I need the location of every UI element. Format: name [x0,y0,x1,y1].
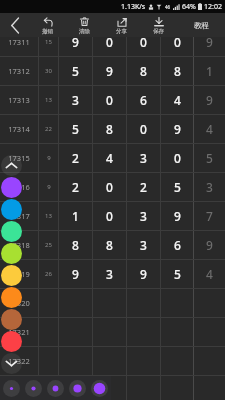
button[interactable]: 17318 [0,231,38,260]
button[interactable] [59,289,92,318]
button[interactable]: 3 [194,173,225,202]
button[interactable]: 30 [39,57,58,86]
button[interactable] [59,318,92,347]
button[interactable] [39,376,58,400]
button[interactable]: 4 [194,260,225,289]
button[interactable]: 1 [194,57,225,86]
button[interactable]: 17315 [0,144,38,173]
button[interactable] [39,318,58,347]
button[interactable] [127,347,160,376]
button[interactable]: 9 [59,28,92,57]
button[interactable]: Color swatch [1,177,22,198]
button[interactable]: 17322 [0,347,38,376]
button[interactable]: 25 [39,231,58,260]
button[interactable]: 0 [93,86,126,115]
button[interactable]: 保存 [140,13,177,37]
button[interactable] [59,376,92,400]
button[interactable]: Scroll up [1,155,22,176]
button[interactable]: 17319 [0,260,38,289]
button[interactable]: 2 [59,144,92,173]
button[interactable]: 17316 [0,173,38,202]
button[interactable]: 3 [59,86,92,115]
button[interactable]: 2 [127,173,160,202]
button[interactable]: 17311 [0,28,38,57]
button[interactable]: 0 [127,28,160,57]
button[interactable]: 5 [194,144,225,173]
button[interactable]: 撤销 [29,13,66,37]
button[interactable]: 17323 [0,376,38,400]
button[interactable]: 17320 [0,289,38,318]
button[interactable] [59,347,92,376]
button[interactable] [93,376,126,400]
button[interactable]: Color swatch [1,331,22,352]
button[interactable]: 4 [194,115,225,144]
button[interactable]: 4 [161,86,193,115]
button[interactable]: 分享 [103,13,140,37]
button[interactable]: 3 [127,231,160,260]
button[interactable]: Color swatch [1,221,22,242]
button[interactable]: 7 [194,202,225,231]
button[interactable]: 9 [161,202,193,231]
button[interactable]: 0 [161,28,193,57]
button[interactable] [39,289,58,318]
button[interactable]: 17313 [0,86,38,115]
button[interactable] [93,347,126,376]
button[interactable]: 8 [59,231,92,260]
button[interactable]: 0 [127,115,160,144]
button[interactable]: 4 [93,144,126,173]
button[interactable]: 0 [93,28,126,57]
button[interactable]: 17314 [0,115,38,144]
button[interactable]: 8 [93,231,126,260]
button[interactable]: 9 [194,28,225,57]
button[interactable]: Color swatch [1,199,22,220]
button[interactable]: 13 [39,86,58,115]
button[interactable]: Back [0,13,29,37]
button[interactable] [194,347,225,376]
button[interactable]: 8 [127,57,160,86]
button[interactable]: 0 [93,202,126,231]
button[interactable]: 13 [39,202,58,231]
button[interactable]: 9 [93,57,126,86]
button[interactable]: 6 [127,86,160,115]
button[interactable] [39,347,58,376]
button[interactable]: 9 [194,231,225,260]
button[interactable]: 5 [59,115,92,144]
button[interactable]: 教程 [177,13,225,37]
button[interactable]: 9 [161,115,193,144]
button[interactable]: 5 [59,57,92,86]
button[interactable]: 26 [39,260,58,289]
button[interactable]: 8 [93,115,126,144]
button[interactable] [161,347,193,376]
button[interactable]: Color swatch [1,265,22,286]
button[interactable]: 6 [161,231,193,260]
button[interactable]: 5 [161,173,193,202]
button[interactable]: Scroll down [1,353,22,374]
button[interactable] [93,318,126,347]
button[interactable]: 2 [59,173,92,202]
button[interactable] [161,289,193,318]
button[interactable]: 3 [93,260,126,289]
button[interactable] [127,318,160,347]
button[interactable]: 清除 [66,13,103,37]
button[interactable]: Brush size [22,376,44,400]
button[interactable]: 0 [93,173,126,202]
button[interactable]: 5 [161,260,193,289]
button[interactable]: Brush size [88,376,110,400]
button[interactable]: Brush size [66,376,88,400]
button[interactable]: Color swatch [1,309,22,330]
button[interactable] [127,289,160,318]
button[interactable]: 17317 [0,202,38,231]
button[interactable]: 3 [127,144,160,173]
button[interactable]: 17321 [0,318,38,347]
button[interactable]: Brush size [44,376,66,400]
button[interactable]: 9 [59,260,92,289]
button[interactable]: 17312 [0,57,38,86]
button[interactable] [161,318,193,347]
button[interactable]: 0 [161,144,193,173]
button[interactable]: 9 [39,144,58,173]
button[interactable]: 9 [194,86,225,115]
button[interactable]: 3 [127,202,160,231]
